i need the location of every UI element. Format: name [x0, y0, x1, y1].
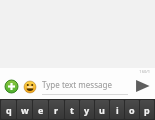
staticText: u: [99, 104, 105, 116]
staticText: i: [116, 104, 119, 116]
button[interactable]: Insert emoji: [21, 78, 38, 95]
button[interactable]: y: [80, 100, 94, 119]
staticText: 160/1: [139, 69, 150, 74]
button[interactable]: w: [17, 100, 32, 119]
button[interactable]: r: [49, 100, 64, 119]
button[interactable]: Type text message: [42, 73, 128, 99]
button[interactable]: e: [33, 100, 48, 119]
staticText: o: [129, 104, 135, 116]
staticText: p: [144, 104, 150, 116]
staticText: t: [70, 104, 74, 116]
button[interactable]: t: [65, 100, 79, 119]
staticText: w: [21, 104, 29, 116]
staticText: Type text message: [42, 79, 112, 90]
button[interactable]: o: [125, 100, 139, 119]
staticText: y: [84, 104, 90, 116]
button[interactable]: Send message: [131, 75, 153, 97]
button[interactable]: u: [95, 100, 109, 119]
button[interactable]: p: [140, 100, 154, 119]
staticText: r: [54, 104, 59, 116]
staticText: q: [6, 104, 12, 116]
button[interactable]: Add attachment: [3, 78, 20, 95]
button[interactable]: q: [1, 100, 16, 119]
staticText: e: [38, 104, 44, 116]
button[interactable]: i: [110, 100, 124, 119]
